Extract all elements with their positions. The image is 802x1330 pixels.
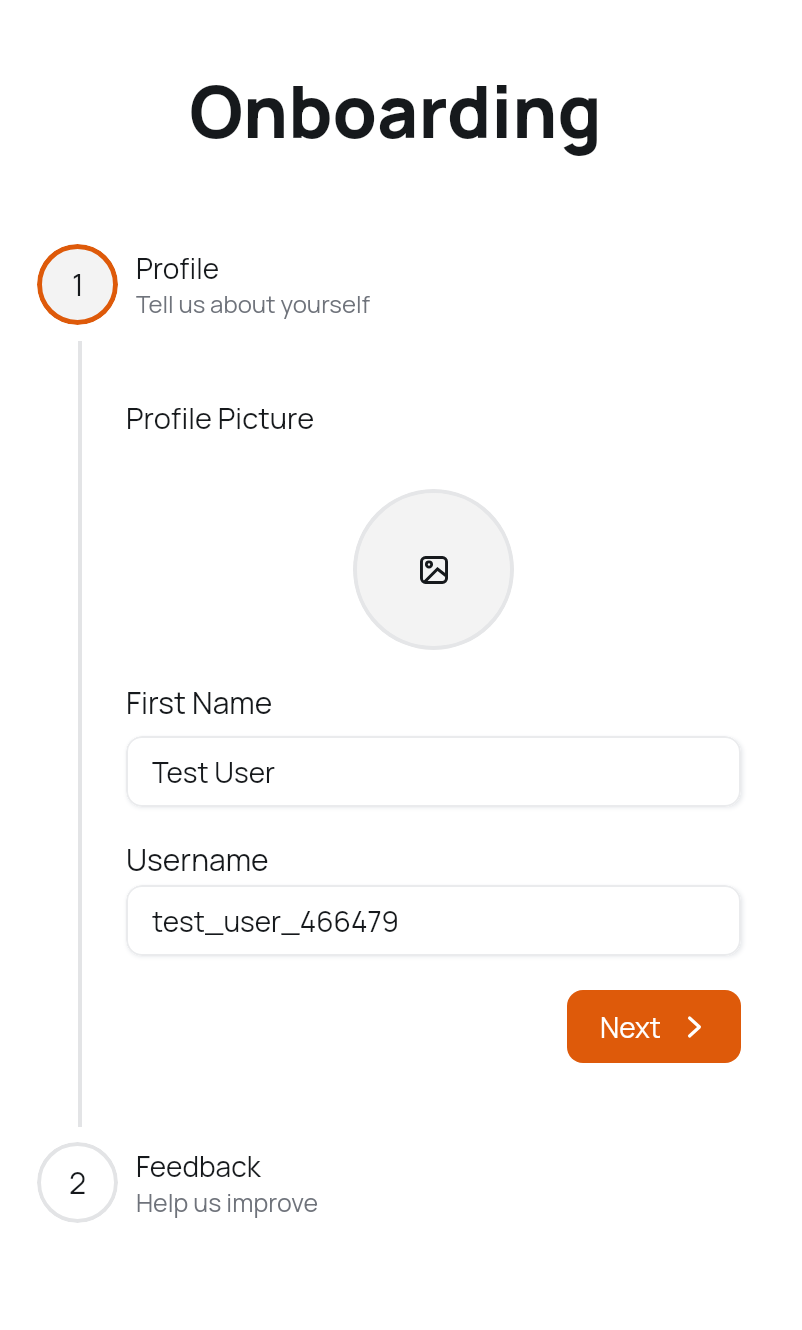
button[interactable]: Upload profile picture bbox=[353, 489, 514, 650]
staticText: Tell us about yourself bbox=[136, 287, 371, 320]
staticText: Test User bbox=[152, 753, 276, 791]
staticText: 1 bbox=[72, 264, 84, 305]
staticText: 2 bbox=[69, 1162, 87, 1203]
button[interactable]: Test User bbox=[126, 736, 741, 807]
button[interactable]: Next bbox=[567, 990, 741, 1063]
staticText: Onboarding bbox=[189, 62, 602, 159]
staticText: Feedback bbox=[136, 1147, 261, 1185]
button[interactable]: test_user_466479 bbox=[126, 885, 741, 956]
button[interactable]: 1 bbox=[0, 244, 802, 325]
staticText: Help us improve bbox=[136, 1185, 319, 1219]
staticText: Profile Picture bbox=[126, 398, 315, 438]
staticText: Profile bbox=[136, 249, 220, 287]
staticText: First Name bbox=[126, 682, 273, 723]
staticText: Next bbox=[600, 1008, 661, 1046]
staticText: Username bbox=[126, 839, 269, 880]
button[interactable]: 2 bbox=[0, 1142, 802, 1223]
staticText: test_user_466479 bbox=[152, 902, 399, 940]
